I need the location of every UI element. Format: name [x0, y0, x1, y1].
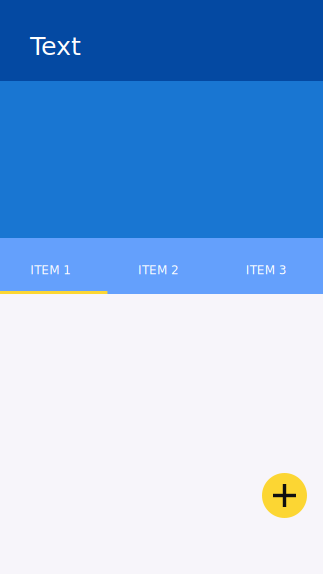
- staticText: ITEM 3: [246, 263, 287, 277]
- button[interactable]: ITEM 2: [108, 238, 215, 294]
- staticText: ITEM 1: [30, 263, 71, 277]
- button[interactable]: Add: [262, 473, 307, 518]
- button[interactable]: ITEM 1: [0, 238, 108, 294]
- staticText: ITEM 2: [138, 263, 179, 277]
- button[interactable]: ITEM 3: [215, 238, 323, 294]
- staticText: Text: [30, 31, 81, 61]
